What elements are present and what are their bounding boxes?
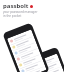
staticText: your password manager in the pocket bbox=[3, 10, 38, 18]
staticText: passbolt bbox=[3, 2, 29, 10]
